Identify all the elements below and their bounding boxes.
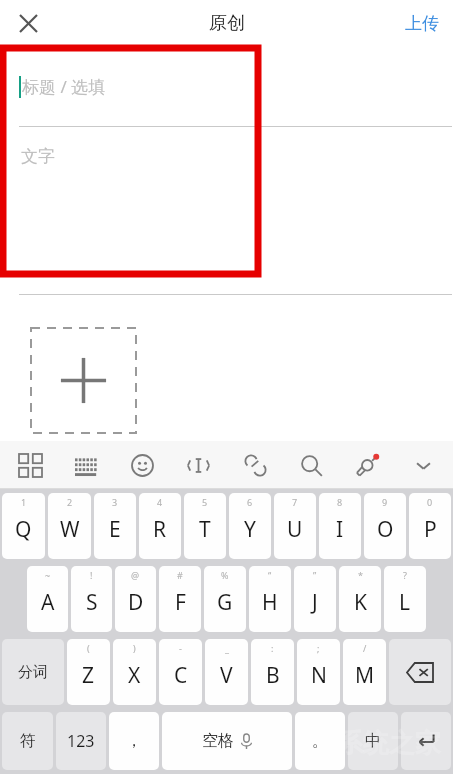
staticText: !: [90, 569, 93, 581]
staticText: 123: [67, 730, 95, 752]
staticText: 0: [427, 496, 433, 508]
staticText: 2: [67, 496, 73, 508]
staticText: /: [363, 642, 367, 654]
button[interactable]: Add image: [31, 328, 136, 433]
staticText: Q: [15, 515, 32, 544]
button[interactable]: Link: [235, 445, 275, 485]
staticText: R: [153, 515, 167, 544]
button[interactable]: (: [67, 639, 110, 705]
button[interactable]: 4: [139, 493, 181, 559]
staticText: N: [311, 661, 327, 690]
staticText: E: [109, 515, 121, 544]
staticText: F: [175, 588, 186, 617]
staticText: I: [336, 515, 344, 544]
button[interactable]: 6: [229, 493, 271, 559]
button[interactable]: 8: [319, 493, 361, 559]
staticText: 6: [247, 496, 253, 508]
staticText: H: [262, 588, 278, 617]
button[interactable]: 0: [409, 493, 451, 559]
button[interactable]: ”: [294, 566, 336, 632]
button[interactable]: Emoji: [122, 445, 162, 485]
button[interactable]: /: [343, 639, 386, 705]
staticText: L: [399, 588, 411, 617]
button[interactable]: ，: [109, 712, 159, 770]
button[interactable]: 1: [2, 493, 45, 559]
staticText: 9: [382, 496, 388, 508]
button[interactable]: Keyboard: [66, 445, 106, 485]
staticText: K: [354, 588, 367, 617]
button[interactable]: Search: [291, 445, 331, 485]
button[interactable]: -: [159, 639, 202, 705]
button[interactable]: “: [249, 566, 291, 632]
staticText: -: [179, 642, 182, 654]
staticText: X: [128, 661, 141, 690]
staticText: 。: [312, 731, 328, 751]
staticText: J: [312, 588, 318, 617]
staticText: :: [271, 642, 274, 654]
button[interactable]: 空格: [162, 712, 292, 770]
staticText: Y: [244, 515, 256, 544]
button[interactable]: ?: [384, 566, 426, 632]
staticText: @: [131, 569, 140, 581]
button[interactable]: _: [205, 639, 248, 705]
staticText: 系统之家: [337, 727, 441, 760]
staticText: G: [217, 588, 233, 617]
staticText: ): [133, 642, 136, 654]
button[interactable]: 123: [56, 712, 106, 770]
staticText: #: [177, 569, 183, 581]
staticText: 5: [202, 496, 208, 508]
button[interactable]: %: [204, 566, 246, 632]
button[interactable]: #: [159, 566, 201, 632]
staticText: D: [128, 588, 144, 617]
button[interactable]: *: [339, 566, 381, 632]
staticText: O: [377, 515, 394, 544]
button[interactable]: !: [71, 566, 112, 632]
button[interactable]: Cursor: [178, 445, 218, 485]
staticText: ~: [45, 569, 51, 581]
button[interactable]: Enter: [401, 712, 451, 770]
button[interactable]: 。: [295, 712, 345, 770]
button[interactable]: 符: [2, 712, 53, 770]
button[interactable]: 3: [94, 493, 136, 559]
button[interactable]: Grid: [10, 445, 50, 485]
staticText: %: [221, 569, 229, 581]
staticText: 标题 / 选填: [22, 75, 106, 98]
button[interactable]: 标题 / 选填: [0, 46, 453, 126]
staticText: A: [41, 588, 55, 617]
button[interactable]: 2: [48, 493, 91, 559]
button[interactable]: @: [115, 566, 156, 632]
staticText: 8: [337, 496, 343, 508]
button[interactable]: ;: [297, 639, 340, 705]
button[interactable]: Close: [8, 3, 48, 43]
staticText: 1: [21, 496, 27, 508]
button[interactable]: :: [251, 639, 294, 705]
staticText: 中: [365, 731, 381, 751]
staticText: *: [358, 569, 363, 581]
staticText: U: [287, 515, 303, 544]
staticText: ，: [126, 731, 142, 751]
staticText: C: [174, 661, 188, 690]
staticText: 原创: [209, 12, 245, 35]
button[interactable]: Collapse: [403, 445, 443, 485]
button[interactable]: ~: [27, 566, 68, 632]
staticText: (: [87, 642, 90, 654]
button[interactable]: 5: [184, 493, 226, 559]
button[interactable]: Candy: [347, 445, 387, 485]
button[interactable]: 文字: [0, 127, 453, 294]
staticText: 分词: [18, 663, 48, 682]
staticText: “: [268, 569, 272, 581]
button[interactable]: Backspace: [389, 639, 451, 705]
staticText: 上传: [405, 13, 439, 34]
staticText: ?: [403, 569, 407, 581]
button[interactable]: 中: [348, 712, 398, 770]
button[interactable]: 分词: [2, 639, 64, 705]
staticText: Z: [82, 661, 95, 690]
staticText: M: [355, 661, 375, 690]
button[interactable]: ): [113, 639, 156, 705]
staticText: 7: [292, 496, 298, 508]
staticText: B: [266, 661, 280, 690]
button[interactable]: 上传: [401, 7, 443, 40]
staticText: 3: [112, 496, 118, 508]
button[interactable]: 9: [364, 493, 406, 559]
button[interactable]: 7: [274, 493, 316, 559]
